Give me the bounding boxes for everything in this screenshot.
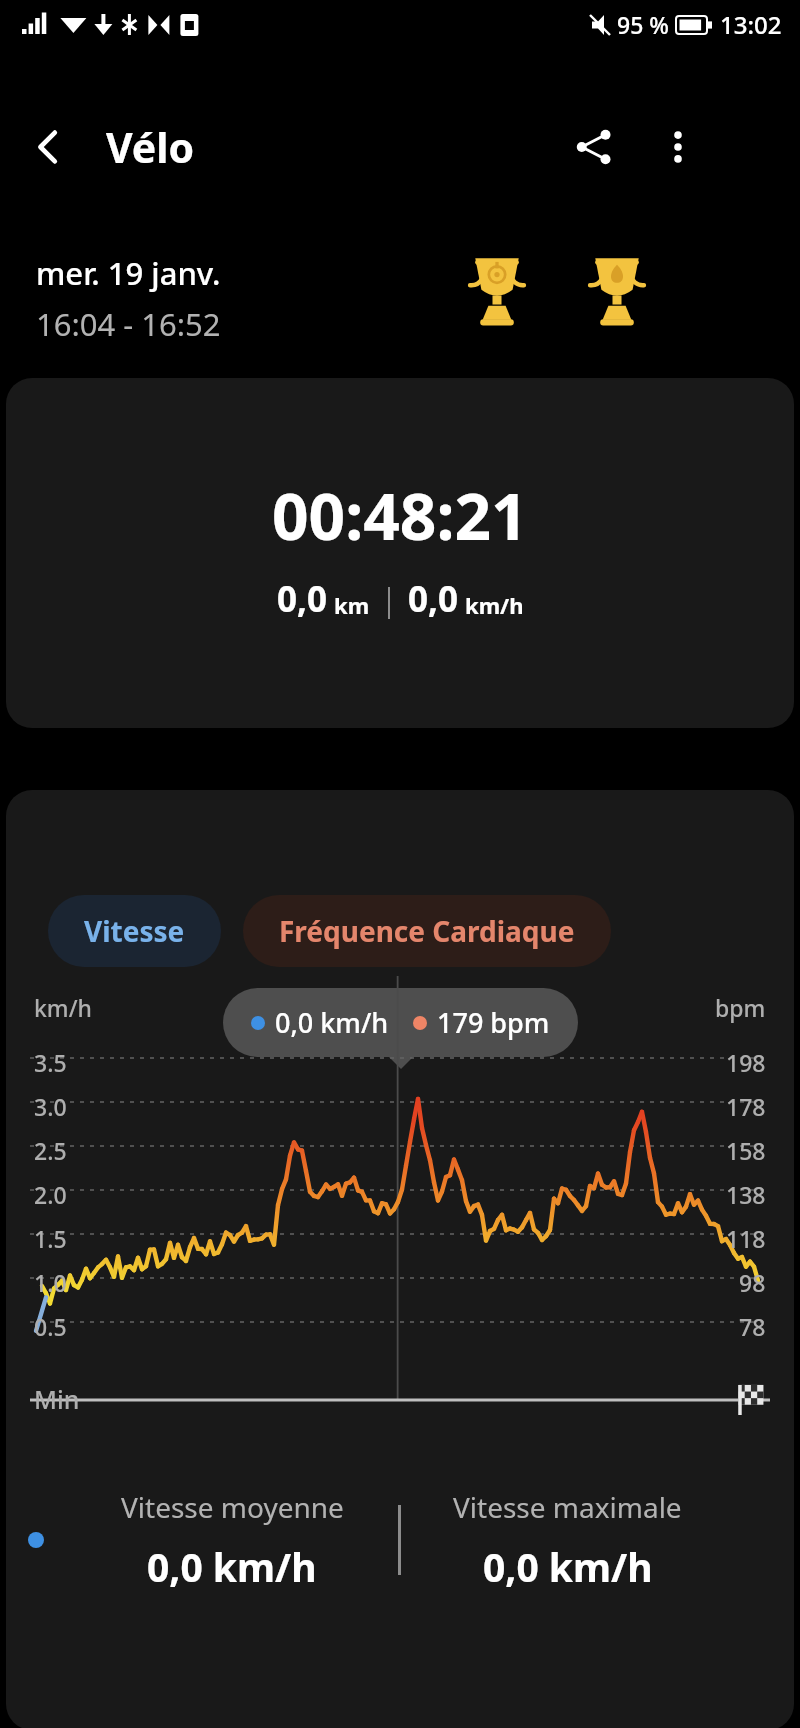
staticText: 198 [726, 1047, 766, 1078]
staticText: 00:48:21 [272, 472, 528, 559]
staticText: Vitesse [84, 912, 185, 950]
staticText: 179 bpm [437, 1004, 550, 1041]
staticText: 78 [739, 1311, 766, 1342]
staticText: 118 [726, 1223, 766, 1254]
staticText: 98 [739, 1267, 766, 1298]
staticText: mer. 19 janv. [36, 252, 221, 294]
staticText: Vitesse maximale [453, 1488, 682, 1526]
other: Finish [734, 1383, 766, 1415]
button[interactable]: Fréquence Cardiaque [243, 895, 611, 967]
staticText: 0,0 [277, 575, 328, 623]
staticText: 0,0 km/h [147, 1540, 317, 1593]
staticText: Min [34, 1382, 80, 1416]
staticText: 2.0 [34, 1179, 67, 1210]
staticText: km/h [34, 992, 92, 1023]
staticText: 95 % [617, 9, 669, 40]
button[interactable]: Back [16, 115, 80, 179]
staticText: 3.5 [34, 1047, 67, 1078]
staticText: km/h [465, 590, 524, 620]
button[interactable]: More options [646, 115, 710, 179]
button[interactable]: 00:48:21 [6, 378, 794, 728]
staticText: 13:02 [720, 8, 782, 41]
staticText: 3.0 [34, 1091, 67, 1122]
staticText: 138 [726, 1179, 766, 1210]
staticText: 0.5 [34, 1311, 67, 1342]
button[interactable]: Vitesse [48, 895, 221, 967]
staticText: 0,0 km/h [483, 1540, 653, 1593]
staticText: km [334, 590, 370, 620]
staticText: 1.0 [34, 1267, 67, 1298]
staticText: 2.5 [34, 1135, 67, 1166]
staticText: 16:04 - 16:52 [36, 303, 221, 345]
staticText: 178 [726, 1091, 766, 1122]
staticText: Vélo [106, 119, 195, 175]
staticText: Vitesse moyenne [121, 1488, 344, 1526]
staticText: 0,0 [408, 575, 459, 623]
staticText: 0,0 km/h [275, 1004, 389, 1041]
staticText: 158 [726, 1135, 766, 1166]
staticText: 1.5 [34, 1223, 67, 1254]
button[interactable]: Share [562, 115, 626, 179]
staticText: Fréquence Cardiaque [279, 912, 575, 950]
staticText: bpm [715, 992, 766, 1023]
